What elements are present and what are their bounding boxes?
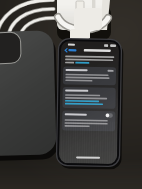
button[interactable]: Phone and charger photo	[0, 0, 142, 189]
